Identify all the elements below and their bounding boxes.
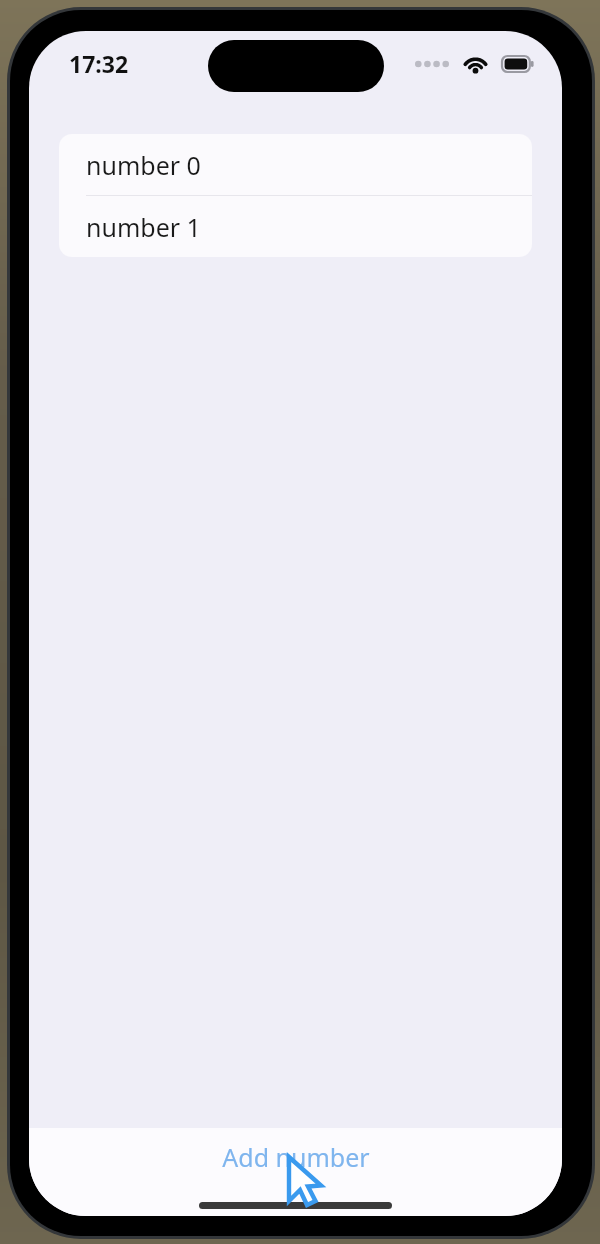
button[interactable]: Add number [29, 1128, 562, 1185]
staticText: Add number [222, 1140, 370, 1174]
button[interactable]: number 1 [59, 196, 532, 257]
staticText: 17:32 [69, 48, 129, 79]
other: Battery [501, 55, 534, 73]
staticText: number 1 [86, 210, 201, 244]
button[interactable]: number 0 [59, 134, 532, 196]
other: Cellular signal [415, 60, 449, 68]
staticText: number 0 [86, 148, 201, 182]
other: Wi-Fi [462, 53, 489, 74]
